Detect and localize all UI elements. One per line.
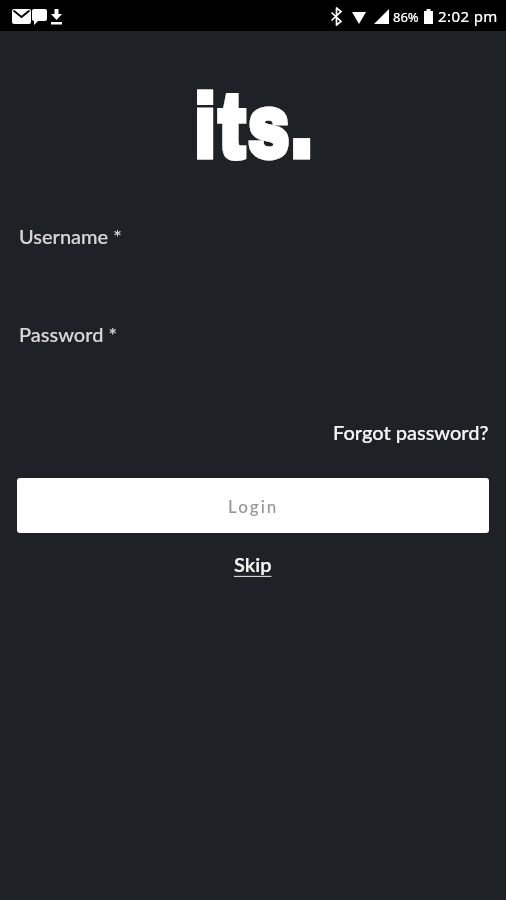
staticText: Username *: [19, 224, 122, 248]
button[interactable]: Login: [17, 478, 489, 533]
button[interactable]: Skip: [234, 552, 272, 576]
staticText: Forgot password?: [333, 420, 489, 444]
staticText: Skip: [234, 552, 272, 576]
staticText: 2:02 pm: [438, 6, 498, 26]
staticText: 86%: [393, 8, 419, 26]
staticText: Login: [228, 496, 279, 516]
staticText: its.: [193, 77, 313, 177]
button[interactable]: Forgot password?: [333, 420, 489, 444]
staticText: Password *: [19, 322, 117, 346]
